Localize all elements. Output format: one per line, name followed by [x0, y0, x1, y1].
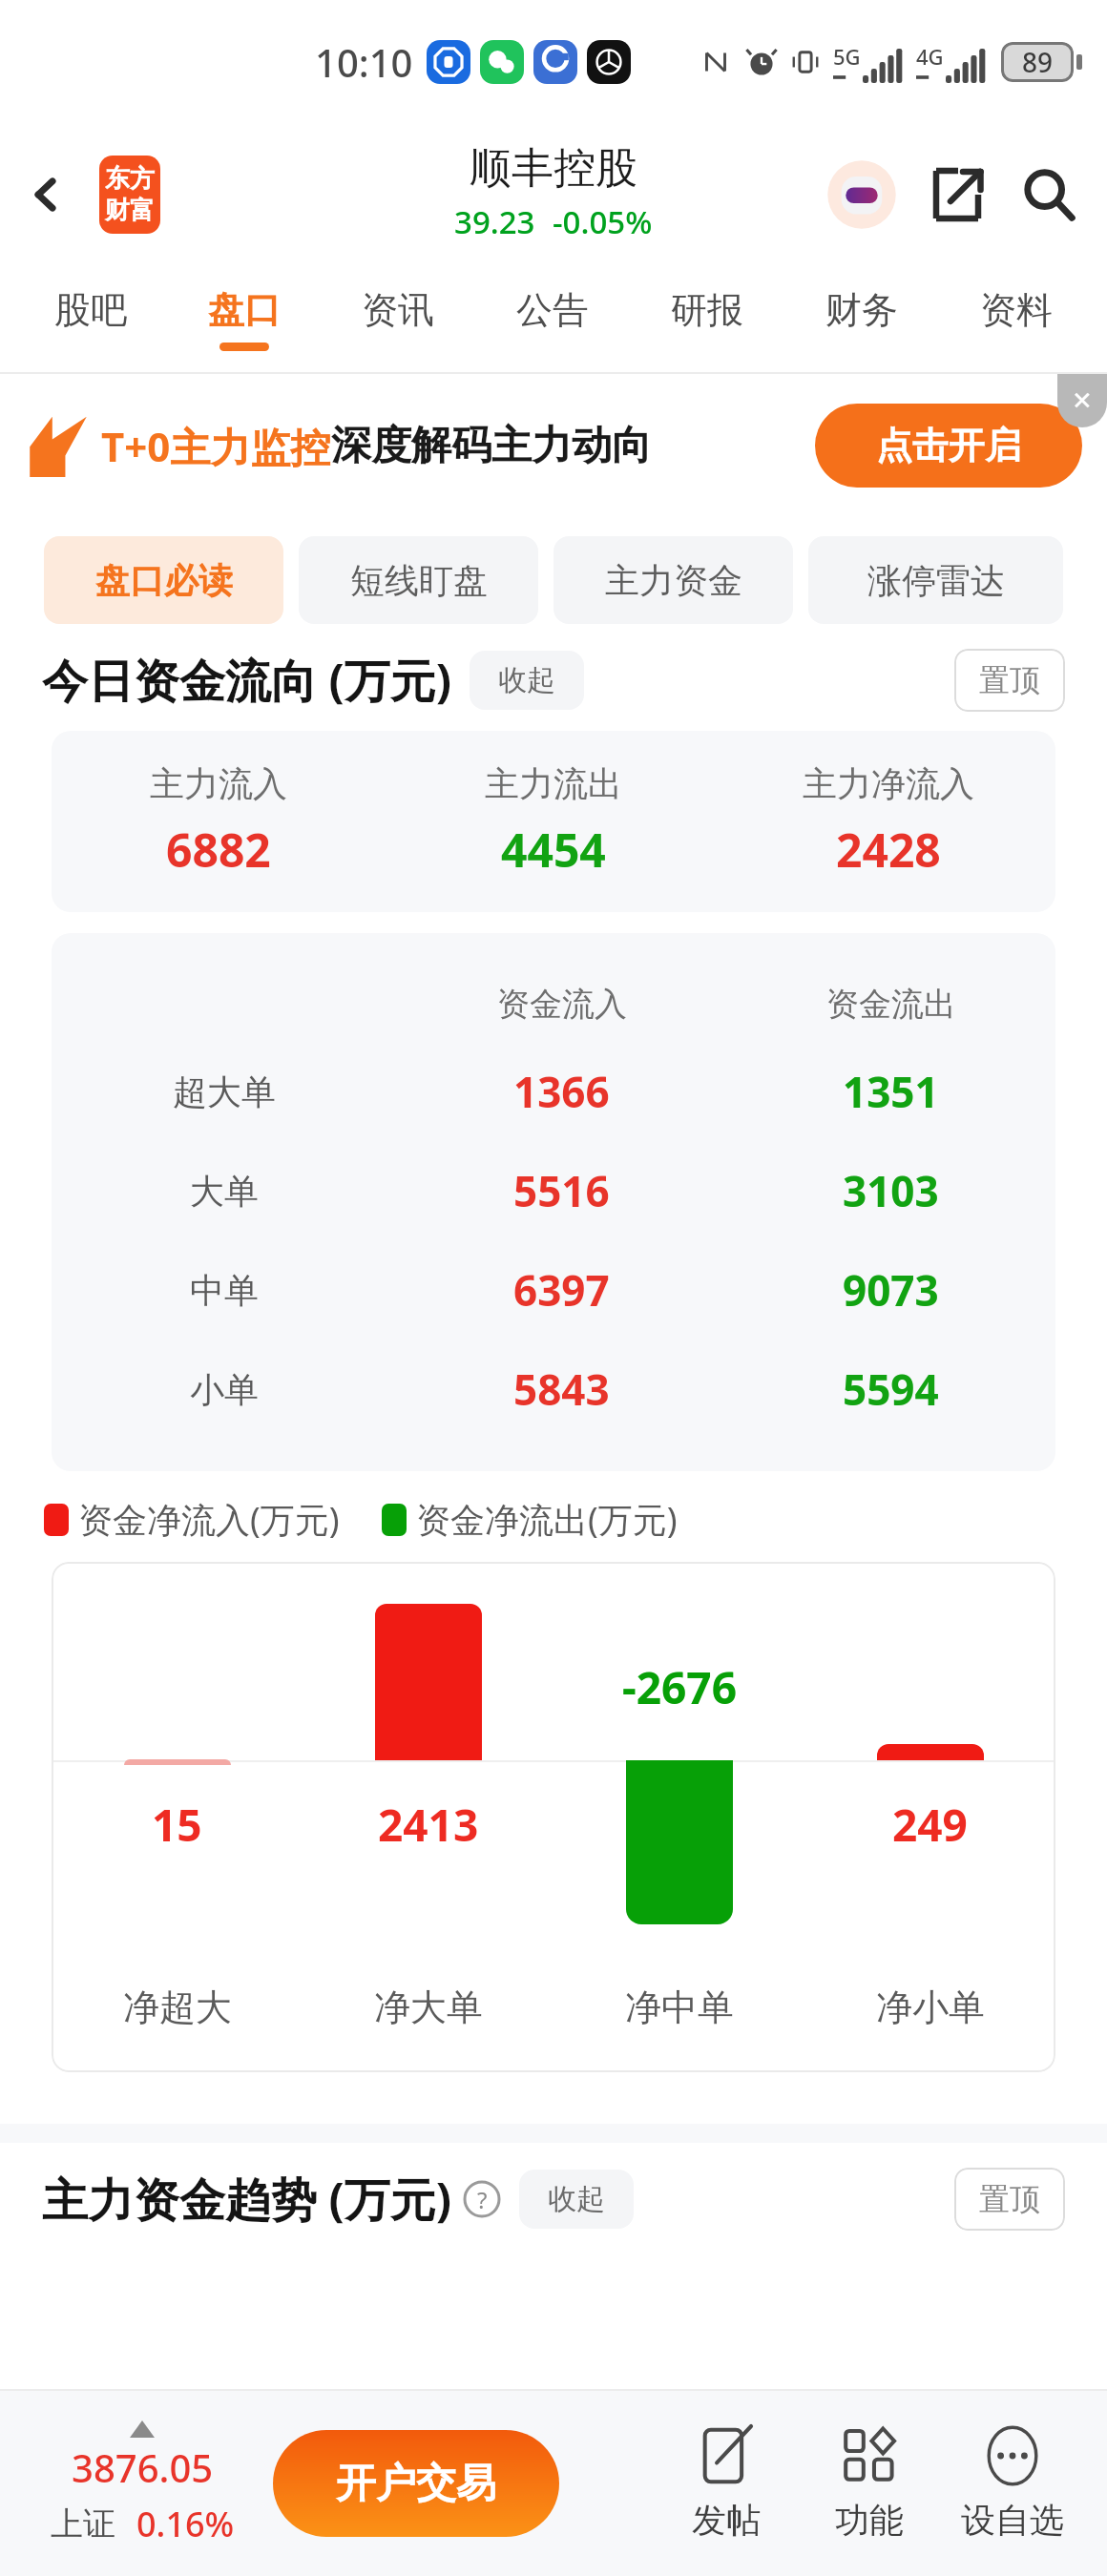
staticText: 资料	[980, 287, 1053, 333]
staticText: 3103	[843, 1162, 939, 1219]
staticText: 置顶	[979, 661, 1040, 699]
staticText: 资金流出	[826, 984, 956, 1025]
staticText: 中单	[190, 1269, 259, 1312]
staticText: 资讯	[362, 287, 434, 333]
button[interactable]: 设自选	[941, 2426, 1084, 2542]
button[interactable]: 资讯	[321, 265, 475, 372]
staticText: 公告	[516, 287, 589, 333]
staticText: -2676	[622, 1657, 737, 1717]
staticText: -0.05%	[553, 200, 653, 243]
staticText: 净小单	[876, 1984, 985, 2030]
staticText: 89	[1022, 44, 1054, 80]
staticText: 资金净流出(万元)	[416, 1496, 678, 1543]
staticText: 主力流入	[150, 762, 287, 805]
staticText: 设自选	[961, 2499, 1064, 2542]
staticText: 收起	[548, 2181, 605, 2217]
staticText: 短线盯盘	[350, 559, 488, 602]
staticText: 5843	[513, 1361, 610, 1418]
staticText: 10:10	[315, 36, 413, 88]
staticText: 39.23	[454, 200, 535, 243]
staticText: 4454	[501, 819, 606, 881]
staticText: 3876.05	[72, 2441, 214, 2493]
staticText: 财务	[825, 287, 898, 333]
staticText: 资金流入	[497, 984, 627, 1025]
staticText: ✕	[1072, 386, 1093, 415]
button[interactable]: 公告	[475, 265, 630, 372]
button[interactable]: AI助手	[821, 154, 903, 236]
button[interactable]: 研报	[630, 265, 784, 372]
button[interactable]: Share	[916, 154, 998, 236]
button[interactable]: 涨停雷达	[808, 536, 1063, 624]
staticText: 开户交易	[336, 2459, 496, 2509]
staticText: 涨停雷达	[867, 559, 1005, 602]
staticText: 249	[892, 1795, 968, 1855]
button[interactable]: 3876.05	[23, 2420, 261, 2547]
staticText: 主力资金	[605, 559, 742, 602]
staticText: 超大单	[173, 1070, 276, 1113]
staticText: 净中单	[625, 1984, 734, 2030]
staticText: 深度解码主力动向	[331, 421, 652, 471]
staticText: ?	[477, 2184, 488, 2215]
button[interactable]: 发帖	[655, 2426, 798, 2542]
staticText: 上证	[51, 2503, 115, 2545]
button[interactable]: 收起	[470, 651, 584, 710]
staticText: 6882	[166, 819, 271, 881]
staticText: 顺丰控股	[470, 142, 637, 195]
button[interactable]: 盘口	[167, 265, 321, 372]
staticText: T+0主力监控	[101, 419, 331, 473]
button[interactable]: 点击开启	[815, 404, 1082, 488]
button[interactable]: 置顶	[954, 2168, 1065, 2231]
button[interactable]: T+0主力监控	[0, 374, 1107, 517]
staticText: 小单	[190, 1368, 259, 1411]
button[interactable]: 收起	[519, 2170, 634, 2229]
staticText: 今日资金流向 (万元)	[42, 649, 452, 712]
button[interactable]: 盘口必读	[44, 536, 283, 624]
button[interactable]: Search	[1008, 154, 1090, 236]
staticText: 置顶	[979, 2180, 1040, 2218]
staticText: 主力净流入	[803, 762, 974, 805]
button[interactable]: 短线盯盘	[299, 536, 538, 624]
staticText: 1351	[843, 1063, 939, 1120]
staticText: 财富	[105, 195, 155, 226]
staticText: 点击开启	[876, 423, 1021, 468]
button[interactable]: 资料	[939, 265, 1094, 372]
button[interactable]: 置顶	[954, 649, 1065, 712]
staticText: 盘口必读	[95, 559, 233, 602]
staticText: 15	[152, 1795, 202, 1855]
staticText: 收起	[498, 662, 555, 698]
staticText: 发帖	[692, 2499, 761, 2542]
staticText: 主力资金趋势 (万元)	[42, 2168, 452, 2231]
staticText: 6397	[513, 1261, 610, 1319]
button[interactable]: 财务	[784, 265, 939, 372]
staticText: 功能	[835, 2499, 904, 2542]
staticText: 研报	[671, 287, 743, 333]
button[interactable]: 主力资金	[553, 536, 793, 624]
staticText: 净超大	[123, 1984, 232, 2030]
button[interactable]: Back	[8, 156, 84, 233]
staticText: 主力流出	[485, 762, 622, 805]
staticText: 0.16%	[136, 2501, 235, 2547]
staticText: 净大单	[374, 1984, 483, 2030]
button[interactable]: 开户交易	[273, 2430, 559, 2537]
staticText: 4G	[916, 42, 944, 71]
staticText: 1366	[513, 1063, 610, 1120]
staticText: 东方	[105, 163, 155, 195]
button[interactable]: 功能	[798, 2426, 941, 2542]
staticText: 5516	[513, 1162, 610, 1219]
staticText: 5594	[843, 1361, 939, 1418]
staticText: 9073	[843, 1261, 939, 1319]
button[interactable]: Help	[462, 2179, 502, 2219]
button[interactable]: 股吧	[13, 265, 167, 372]
staticText: 资金净流入(万元)	[78, 1496, 340, 1543]
staticText: 2428	[836, 819, 941, 881]
staticText: 盘口	[208, 287, 281, 333]
button[interactable]: Close	[1057, 374, 1107, 427]
button[interactable]: 东方财富	[99, 156, 160, 234]
staticText: 5G	[833, 42, 861, 71]
staticText: 2413	[378, 1795, 479, 1855]
staticText: 大单	[190, 1170, 259, 1213]
staticText: 股吧	[54, 287, 127, 333]
